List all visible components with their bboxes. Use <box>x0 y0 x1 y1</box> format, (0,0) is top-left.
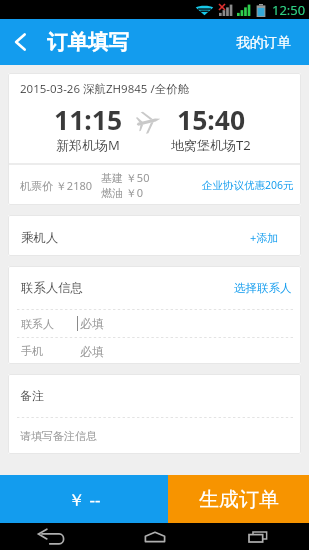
staticText: 11:15 <box>54 102 123 138</box>
staticText: 地窝堡机场T2 <box>171 136 251 154</box>
staticText: 手机 <box>21 344 43 358</box>
staticText: 我的订单 <box>236 34 292 51</box>
staticText: 请填写备注信息 <box>20 429 97 443</box>
staticText: 生成订单 <box>199 487 279 512</box>
staticText: 联系人信息 <box>21 280 83 296</box>
button[interactable]: 选择联系人 <box>226 275 301 301</box>
staticText: 订单填写 <box>47 29 129 55</box>
button[interactable]: Back <box>0 523 103 550</box>
staticText: 选择联系人 <box>234 281 292 295</box>
staticText: 基建 ￥50 <box>101 170 150 185</box>
staticText: 新郑机场M <box>56 136 120 154</box>
staticText: 12:50 <box>272 1 306 19</box>
staticText: 燃油 ￥0 <box>101 185 144 200</box>
staticText: +添加 <box>250 230 279 245</box>
staticText: 必填 <box>80 316 104 331</box>
button[interactable]: Recent apps <box>206 523 309 550</box>
staticText: ￥ -- <box>68 488 101 511</box>
button[interactable]: Back <box>0 19 40 65</box>
staticText: 乘机人 <box>21 230 59 246</box>
button[interactable]: 生成订单 <box>168 475 309 523</box>
staticText: 15:40 <box>177 102 246 138</box>
staticText: 备注 <box>20 388 44 403</box>
staticText: 联系人 <box>21 317 54 331</box>
staticText: 必填 <box>80 344 104 359</box>
button[interactable]: +添加 <box>242 224 301 251</box>
button[interactable]: ￥ -- <box>0 475 168 523</box>
staticText: 2015-03-26 深航ZH9845 /全价舱 <box>20 81 190 97</box>
staticText: 机票价 ￥2180 <box>20 178 93 193</box>
staticText: 企业协议优惠206元 <box>202 178 294 192</box>
button[interactable]: Home <box>103 523 206 550</box>
button[interactable]: 我的订单 <box>226 19 309 65</box>
